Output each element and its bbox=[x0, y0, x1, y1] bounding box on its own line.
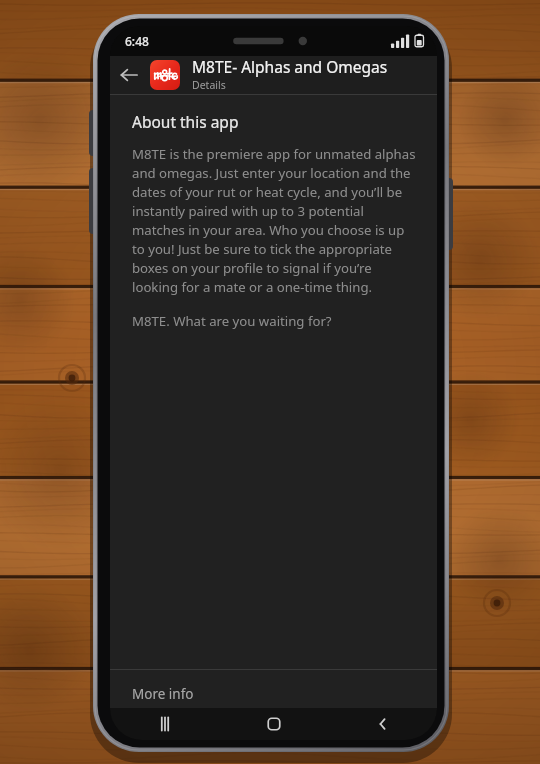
staticText: 6:48 bbox=[125, 33, 149, 49]
button[interactable]: Back bbox=[328, 708, 437, 740]
staticText: More info bbox=[132, 685, 194, 703]
staticText: M8TE- Alphas and Omegas bbox=[192, 56, 388, 77]
staticText: Details bbox=[192, 78, 226, 92]
button[interactable]: More info bbox=[110, 670, 437, 708]
staticText: M8TE is the premiere app for unmated alp… bbox=[132, 145, 417, 296]
button[interactable]: Recent apps bbox=[110, 708, 219, 740]
button[interactable]: Back bbox=[110, 56, 148, 94]
staticText: M8TE. What are you waiting for? bbox=[132, 312, 332, 330]
button[interactable]: Home bbox=[219, 708, 328, 740]
staticText: About this app bbox=[132, 111, 239, 132]
button[interactable]: M8TE app icon bbox=[150, 60, 180, 90]
